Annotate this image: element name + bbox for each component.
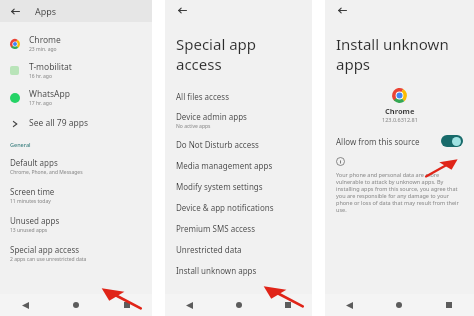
button[interactable]: Recents — [424, 294, 474, 316]
staticText: Install unknown apps — [176, 265, 257, 276]
button[interactable]: Premium SMS access — [165, 218, 312, 239]
button[interactable]: Screen time — [0, 181, 152, 210]
button[interactable]: Default apps — [0, 152, 152, 181]
button[interactable]: Media management apps — [165, 155, 312, 176]
staticText: Media management apps — [176, 160, 273, 171]
button[interactable]: Install unknown apps — [165, 260, 312, 281]
button[interactable]: Special app access — [0, 239, 152, 268]
staticText: Device admin apps — [176, 111, 247, 122]
button[interactable]: Allow from this source — [325, 131, 474, 151]
staticText: Default apps — [10, 157, 58, 168]
button[interactable]: Unused apps — [0, 210, 152, 239]
staticText: 123.0.6312.81 — [382, 116, 418, 123]
button[interactable]: Device admin apps — [165, 107, 312, 134]
staticText: Apps — [35, 5, 57, 17]
staticText: Chrome — [385, 106, 415, 116]
staticText: Device & app notifications — [176, 202, 274, 213]
button[interactable]: Device & app notifications — [165, 197, 312, 218]
staticText: 13 unused apps — [10, 227, 48, 234]
button[interactable]: Unrestricted data — [165, 239, 312, 260]
button[interactable]: Home — [374, 294, 424, 316]
staticText: Allow from this source — [336, 136, 420, 147]
staticText: WhatsApp — [29, 88, 70, 100]
button[interactable]: Chrome — [0, 30, 152, 57]
staticText: Unused apps — [10, 215, 60, 226]
staticText: Install unknown apps — [336, 34, 449, 74]
button[interactable]: See all 79 apps — [0, 111, 152, 135]
button[interactable]: Back — [0, 294, 50, 316]
staticText: 17 hr. ago — [29, 100, 52, 107]
staticText: No active apps — [176, 123, 211, 130]
staticText: General — [10, 141, 31, 148]
button[interactable]: Home — [50, 294, 101, 316]
button[interactable]: Back — [8, 4, 22, 18]
staticText: 2 apps can use unrestricted data — [10, 256, 87, 263]
button[interactable]: Back — [325, 294, 374, 316]
staticText: Chrome — [29, 34, 61, 46]
button[interactable]: Recents — [101, 294, 152, 316]
button[interactable]: Back — [175, 3, 189, 17]
button[interactable]: WhatsApp — [0, 84, 152, 111]
staticText: Special app access — [10, 244, 80, 255]
staticText: Special app access — [176, 34, 301, 74]
staticText: Screen time — [10, 186, 55, 197]
staticText: Your phone and personal data are more vu… — [336, 171, 463, 213]
button[interactable]: Recents — [263, 294, 312, 316]
button[interactable]: T-mobilitat — [0, 57, 152, 84]
staticText: Chrome, Phone, and Messages — [10, 169, 83, 176]
staticText: 11 minutes today — [10, 198, 51, 205]
staticText: 16 hr. ago — [29, 73, 52, 80]
staticText: Do Not Disturb access — [176, 139, 259, 150]
button[interactable]: Modify system settings — [165, 176, 312, 197]
staticText: 23 min. ago — [29, 46, 57, 53]
button[interactable]: All files access — [165, 86, 312, 107]
staticText: T-mobilitat — [29, 61, 72, 73]
staticText: Modify system settings — [176, 181, 263, 192]
button[interactable]: Back — [165, 294, 214, 316]
staticText: Premium SMS access — [176, 223, 256, 234]
staticText: Unrestricted data — [176, 244, 242, 255]
button[interactable]: Do Not Disturb access — [165, 134, 312, 155]
staticText: See all 79 apps — [29, 117, 89, 129]
staticText: All files access — [176, 91, 229, 102]
button[interactable]: Back — [335, 3, 349, 17]
button[interactable]: Home — [214, 294, 263, 316]
